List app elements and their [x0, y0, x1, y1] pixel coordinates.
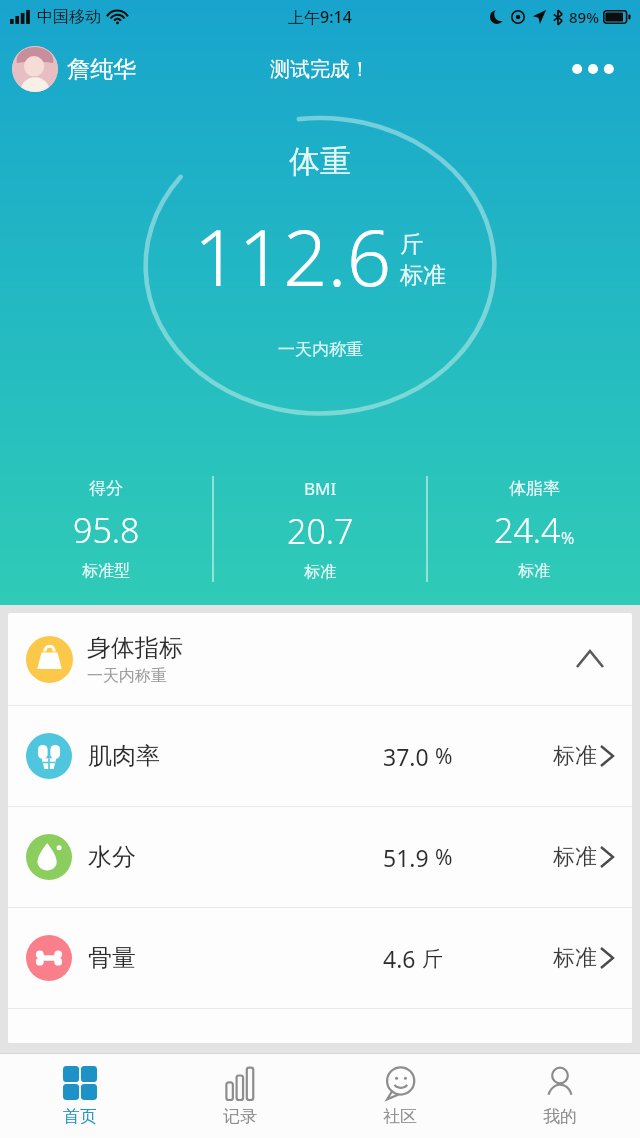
staticText: 112.6: [194, 203, 392, 309]
staticText: %: [435, 843, 453, 872]
staticText: 标准型: [82, 561, 130, 581]
staticText: 詹纯华: [67, 55, 136, 84]
button[interactable]: 社区: [320, 1054, 480, 1138]
staticText: 记录: [223, 1106, 257, 1127]
staticText: 20.7: [287, 508, 354, 554]
staticText: 标准: [518, 561, 550, 581]
staticText: 测试完成！: [270, 57, 370, 82]
button[interactable]: 首页: [0, 1054, 160, 1138]
button[interactable]: 水分: [8, 807, 632, 907]
button[interactable]: More options: [558, 45, 628, 93]
staticText: 首页: [63, 1106, 97, 1127]
staticText: 我的: [543, 1106, 577, 1127]
staticText: 身体指标: [87, 633, 183, 663]
staticText: 斤: [422, 946, 443, 972]
staticText: 斤: [400, 230, 423, 259]
button[interactable]: 骨量: [8, 908, 632, 1008]
button[interactable]: Collapse: [566, 635, 614, 683]
staticText: 骨量: [88, 943, 136, 973]
staticText: 体脂率: [509, 478, 560, 499]
button[interactable]: 体脂率: [428, 468, 640, 590]
staticText: 标准: [553, 944, 597, 972]
button[interactable]: 身体指标: [8, 613, 632, 705]
staticText: 51.9: [383, 842, 429, 873]
button[interactable]: 肌肉率: [8, 706, 632, 806]
staticText: 肌肉率: [88, 741, 160, 771]
button[interactable]: 得分: [0, 468, 212, 590]
staticText: 37.0: [383, 741, 429, 772]
staticText: 标准: [304, 562, 336, 582]
staticText: 标准: [553, 742, 597, 770]
staticText: 得分: [89, 478, 123, 499]
staticText: 中国移动: [37, 7, 101, 27]
staticText: 4.6: [383, 943, 416, 974]
button[interactable]: 记录: [160, 1054, 320, 1138]
staticText: 体重: [289, 142, 351, 181]
staticText: 社区: [383, 1106, 417, 1127]
staticText: 一天内称重: [278, 339, 363, 360]
button[interactable]: 我的: [480, 1054, 640, 1138]
staticText: 标准: [553, 843, 597, 871]
button[interactable]: 詹纯华: [12, 46, 136, 92]
button[interactable]: BMI: [214, 468, 426, 590]
staticText: 89%: [569, 7, 599, 27]
staticText: 上午9:14: [288, 6, 352, 28]
staticText: 95.8: [73, 507, 140, 553]
staticText: BMI: [304, 477, 337, 500]
staticText: 24.4: [494, 507, 561, 553]
staticText: 水分: [88, 842, 136, 872]
staticText: %: [435, 742, 453, 771]
staticText: %: [561, 527, 575, 549]
staticText: 一天内称重: [87, 666, 167, 686]
staticText: 标准: [400, 261, 446, 290]
